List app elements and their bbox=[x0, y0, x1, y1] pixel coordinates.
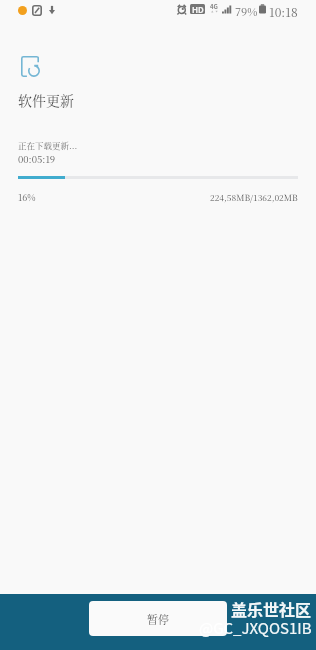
staticText: 暂停 bbox=[147, 611, 169, 627]
staticText: 10:18 bbox=[269, 3, 298, 20]
staticText: 盖乐世社区 bbox=[231, 597, 312, 620]
staticText: 16% bbox=[18, 191, 36, 204]
button[interactable]: 暂停 bbox=[89, 601, 227, 636]
staticText: 00:05:19 bbox=[18, 152, 56, 166]
staticText: 79% bbox=[235, 3, 258, 19]
other: Software update bbox=[21, 56, 39, 77]
staticText: 224,58MB/1362,02MB bbox=[210, 191, 298, 203]
staticText: 软件更新 bbox=[18, 90, 74, 110]
staticText: @GC_JXQOS1IB bbox=[199, 617, 312, 639]
staticText: 正在下载更新... bbox=[18, 139, 78, 151]
staticText: 4G bbox=[210, 2, 218, 11]
staticText: HD bbox=[192, 4, 204, 14]
